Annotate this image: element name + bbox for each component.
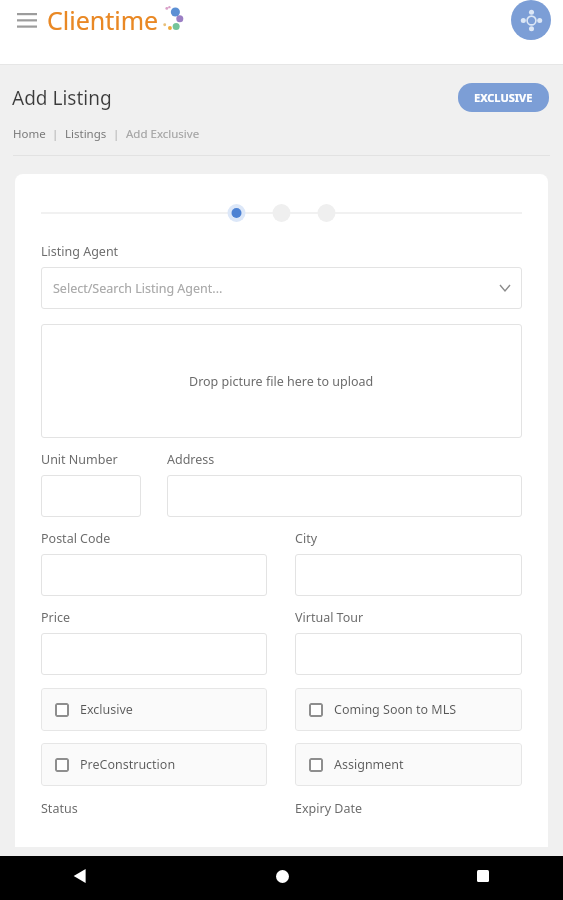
button[interactable]: Text input (167, 475, 522, 517)
staticText: Unit Number (41, 451, 118, 468)
button[interactable]: Text input (41, 554, 267, 596)
button[interactable]: Listings (65, 126, 107, 142)
staticText: Postal Code (41, 530, 111, 547)
staticText: Clientime (47, 3, 159, 37)
staticText: Exclusive (80, 701, 133, 718)
button[interactable]: Assignment (295, 743, 522, 786)
button[interactable]: Profile (511, 0, 551, 40)
button[interactable]: Home (262, 856, 302, 896)
button[interactable]: Text input (295, 633, 522, 675)
staticText: Virtual Tour (295, 609, 364, 626)
staticText: Coming Soon to MLS (334, 701, 457, 718)
button[interactable]: Back (60, 856, 100, 896)
staticText: Address (167, 451, 215, 468)
staticText: Status (41, 800, 78, 817)
button[interactable]: Select/Search Listing Agent... (41, 267, 522, 309)
staticText: | (46, 126, 65, 142)
staticText: Add Listing (12, 85, 112, 111)
button[interactable]: Exclusive (41, 688, 267, 731)
staticText: Price (41, 609, 71, 626)
button[interactable]: Menu (12, 5, 42, 35)
button[interactable]: PreConstruction (41, 743, 267, 786)
staticText: Listing Agent (41, 243, 119, 260)
staticText: | (107, 126, 126, 142)
button[interactable]: Text input (295, 554, 522, 596)
button[interactable]: Text input (41, 475, 141, 517)
staticText: PreConstruction (80, 756, 176, 773)
staticText: Expiry Date (295, 800, 362, 817)
button[interactable]: EXCLUSIVE (458, 83, 549, 112)
staticText: City (295, 530, 318, 547)
staticText: Add Exclusive (126, 126, 200, 142)
button[interactable]: Home (13, 126, 46, 142)
button[interactable]: Coming Soon to MLS (295, 688, 522, 731)
staticText: EXCLUSIVE (474, 90, 533, 105)
button[interactable]: Recent apps (463, 856, 503, 896)
staticText: Select/Search Listing Agent... (53, 280, 223, 297)
button[interactable]: Upload picture (41, 324, 522, 438)
staticText: Drop picture file here to upload (189, 373, 374, 390)
staticText: Assignment (334, 756, 404, 773)
button[interactable]: Text input (41, 633, 267, 675)
